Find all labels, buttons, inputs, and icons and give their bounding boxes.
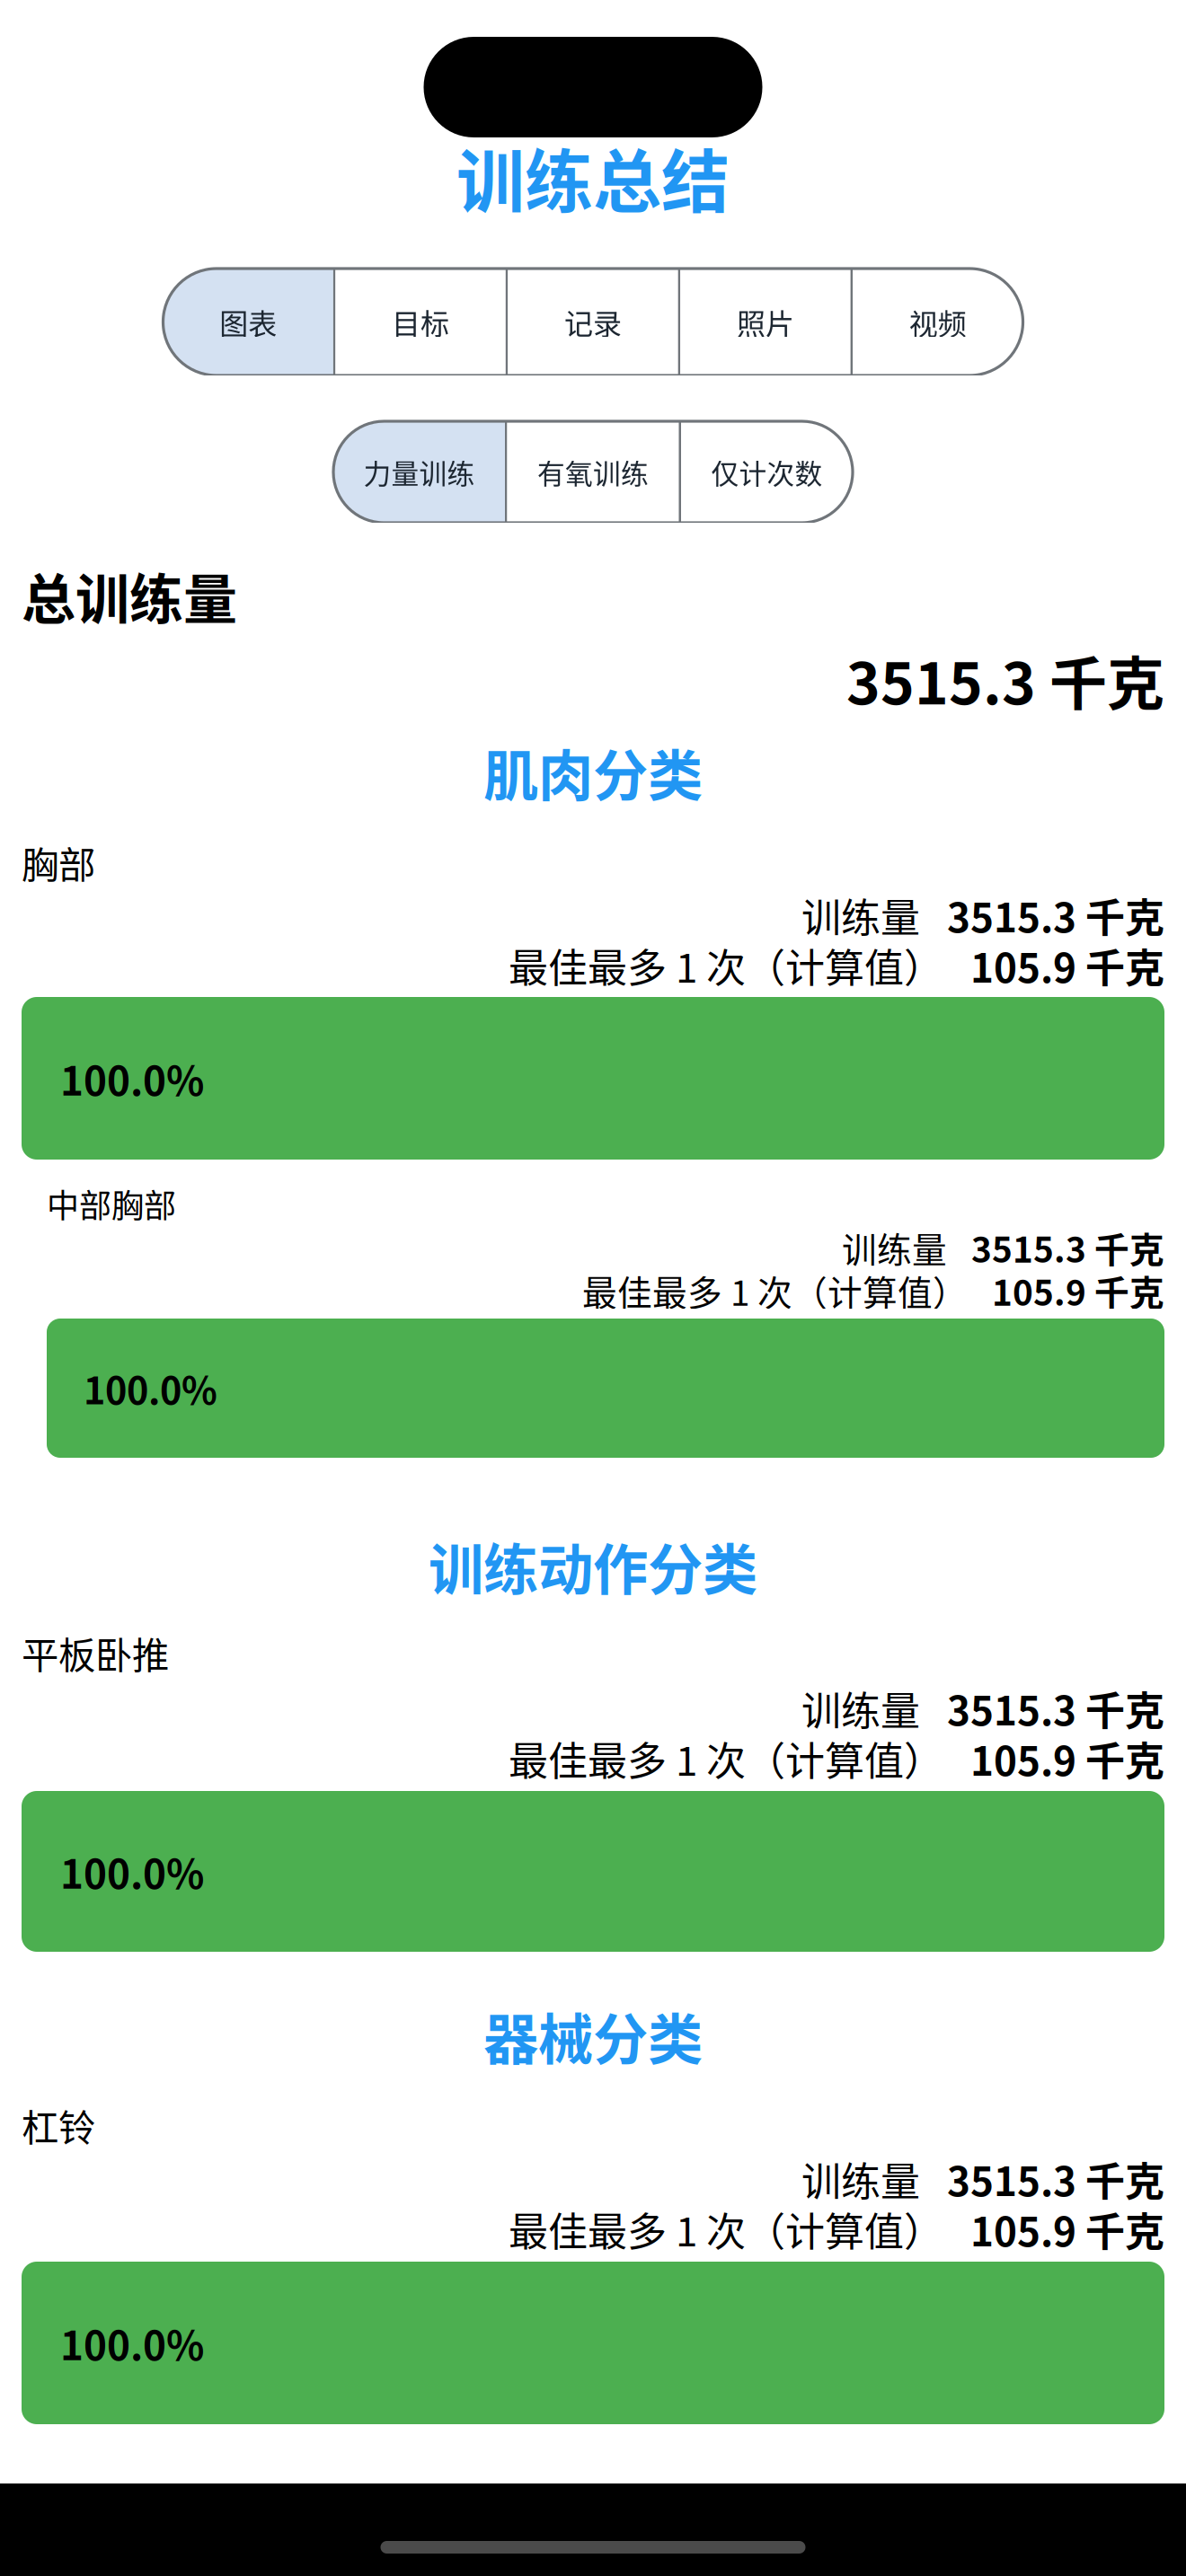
- staticText: 训练量: [801, 2150, 920, 2207]
- button[interactable]: 100.0%: [22, 2262, 1164, 2424]
- staticText: 器械分类: [483, 1996, 703, 2076]
- staticText: 总训练量: [22, 557, 237, 635]
- staticText: 100.0%: [60, 1050, 204, 1107]
- button[interactable]: 100.0%: [47, 1319, 1164, 1458]
- staticText: 目标: [392, 301, 449, 343]
- staticText: 最佳最多 1 次（计算值）: [509, 937, 943, 994]
- staticText: 最佳最多 1 次（计算值）: [582, 1266, 968, 1316]
- staticText: 平板卧推: [22, 1626, 169, 1680]
- staticText: 训练量: [842, 1222, 947, 1273]
- button[interactable]: 100.0%: [22, 997, 1164, 1160]
- button[interactable]: 目标: [335, 269, 506, 375]
- staticText: 100.0%: [60, 2314, 204, 2371]
- staticText: 记录: [564, 301, 622, 343]
- staticText: 胸部: [22, 835, 95, 889]
- staticText: 杠铃: [22, 2098, 95, 2152]
- staticText: 训练动作分类: [429, 1526, 757, 1606]
- staticText: 训练总结: [456, 128, 730, 226]
- button[interactable]: 视频: [853, 269, 1023, 375]
- staticText: 105.9 千克: [992, 1266, 1164, 1316]
- staticText: 仅计次数: [711, 452, 823, 492]
- staticText: 训练量: [801, 887, 920, 944]
- staticText: 3515.3 千克: [971, 1222, 1164, 1273]
- staticText: 最佳最多 1 次（计算值）: [509, 2201, 943, 2258]
- staticText: 3515.3 千克: [947, 887, 1164, 944]
- staticText: 力量训练: [363, 452, 475, 492]
- staticText: 105.9 千克: [970, 2201, 1164, 2258]
- staticText: 3515.3 千克: [846, 638, 1164, 721]
- staticText: 100.0%: [84, 1361, 217, 1415]
- staticText: 105.9 千克: [970, 1730, 1164, 1787]
- staticText: 有氧训练: [537, 452, 649, 492]
- staticText: 图表: [219, 301, 277, 343]
- button[interactable]: 100.0%: [22, 1791, 1164, 1952]
- staticText: 肌肉分类: [483, 732, 703, 812]
- staticText: 训练量: [801, 1680, 920, 1737]
- button[interactable]: 记录: [508, 269, 678, 375]
- staticText: 100.0%: [60, 1843, 204, 1900]
- button[interactable]: 有氧训练: [507, 421, 679, 523]
- staticText: 105.9 千克: [970, 937, 1164, 994]
- staticText: 3515.3 千克: [947, 1680, 1164, 1737]
- button[interactable]: 照片: [680, 269, 851, 375]
- button[interactable]: 仅计次数: [681, 421, 853, 523]
- staticText: 最佳最多 1 次（计算值）: [509, 1730, 943, 1787]
- staticText: 照片: [737, 301, 794, 343]
- staticText: 视频: [909, 301, 967, 343]
- button[interactable]: 图表: [163, 269, 333, 375]
- staticText: 3515.3 千克: [947, 2150, 1164, 2207]
- button[interactable]: 力量训练: [333, 421, 505, 523]
- staticText: 中部胸部: [47, 1180, 176, 1227]
